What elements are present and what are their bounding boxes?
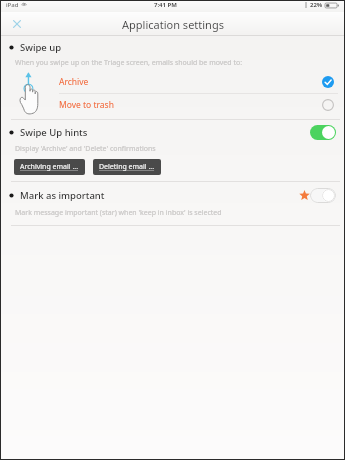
button[interactable]: Off [310, 188, 336, 203]
staticText: Mark message important (star) when 'keep… [15, 208, 222, 218]
staticText: iPad [6, 1, 19, 9]
staticText: Swipe up [20, 41, 62, 54]
staticText: Archive [59, 76, 89, 88]
staticText: 22% [310, 1, 323, 9]
staticText: Deleting email ... [99, 162, 155, 172]
staticText: Display 'Archive' and 'Delete' confirmat… [15, 144, 156, 154]
button[interactable]: On [310, 125, 336, 140]
staticText: Archiving email ... [20, 162, 79, 172]
staticText: Application settings [122, 17, 224, 32]
button[interactable]: Archive [59, 71, 344, 93]
button[interactable]: Deleting email ... [93, 159, 161, 175]
staticText: Mark as important [20, 189, 105, 202]
button[interactable]: Close [7, 14, 27, 34]
button[interactable]: Move to trash [59, 94, 344, 116]
staticText: 7:41 PM [154, 1, 177, 9]
staticText: Swipe Up hints [20, 126, 88, 139]
staticText: When you swipe up on the Triage screen, … [15, 58, 243, 68]
staticText: Move to trash [59, 99, 114, 111]
button[interactable]: Archiving email ... [14, 159, 85, 175]
